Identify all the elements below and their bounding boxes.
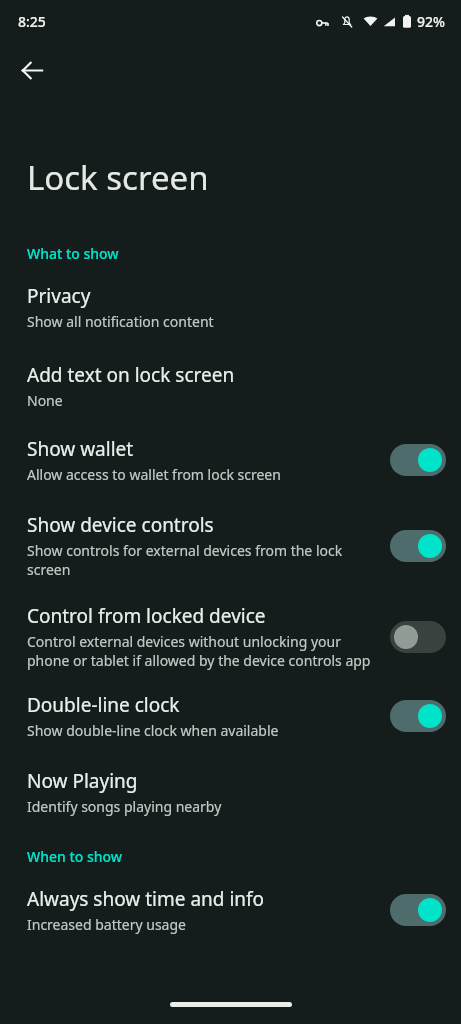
staticText: Control external devices without unlocki… (27, 632, 382, 670)
staticText: Control from locked device (27, 603, 266, 629)
staticText: 92% (417, 12, 445, 31)
button[interactable]: Control from locked device (0, 603, 461, 670)
staticText: Show double-line clock when available (27, 721, 279, 740)
button[interactable]: Now Playing (0, 768, 461, 816)
button[interactable]: Toggle setting (390, 621, 446, 653)
button[interactable]: Back (10, 48, 54, 92)
button[interactable]: Show wallet (0, 436, 461, 484)
staticText: Allow access to wallet from lock screen (27, 465, 281, 484)
staticText: None (27, 391, 63, 410)
staticText: Lock screen (27, 155, 209, 200)
button[interactable]: Add text on lock screen (0, 362, 461, 410)
button[interactable]: Show device controls (0, 512, 461, 579)
staticText: Show device controls (27, 512, 214, 538)
button[interactable]: Double-line clock (0, 692, 461, 740)
staticText: Privacy (27, 283, 91, 309)
staticText: What to show (27, 244, 119, 263)
button[interactable]: Toggle setting (390, 530, 446, 562)
staticText: Always show time and info (27, 886, 265, 912)
button[interactable]: Always show time and info (0, 886, 461, 934)
staticText: Show controls for external devices from … (27, 541, 382, 579)
staticText: Double-line clock (27, 692, 180, 718)
staticText: Identify songs playing nearby (27, 797, 222, 816)
staticText: Show wallet (27, 436, 134, 462)
staticText: 8:25 (18, 12, 46, 31)
staticText: Now Playing (27, 768, 138, 794)
staticText: Show all notification content (27, 312, 214, 331)
button[interactable]: Toggle setting (390, 700, 446, 732)
staticText: When to show (27, 847, 123, 866)
staticText: Add text on lock screen (27, 362, 235, 388)
staticText: Increased battery usage (27, 915, 186, 934)
button[interactable]: Toggle setting (390, 444, 446, 476)
button[interactable]: Toggle setting (390, 894, 446, 926)
button[interactable]: Privacy (0, 283, 461, 331)
